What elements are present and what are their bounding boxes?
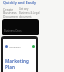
staticText: Get any Business & Legal document. <box>19 7 40 19</box>
staticText: Plan <box>5 64 15 70</box>
staticText: Marketing <box>5 58 29 64</box>
staticText: Quickly and Easily <box>3 0 37 5</box>
staticText: Templates <box>9 45 21 48</box>
staticText: Business Docs <box>4 29 22 33</box>
button[interactable]: Business Docs <box>2 19 39 35</box>
button[interactable]: Templates <box>5 42 35 50</box>
staticText: Create Business Documents <box>3 7 19 23</box>
